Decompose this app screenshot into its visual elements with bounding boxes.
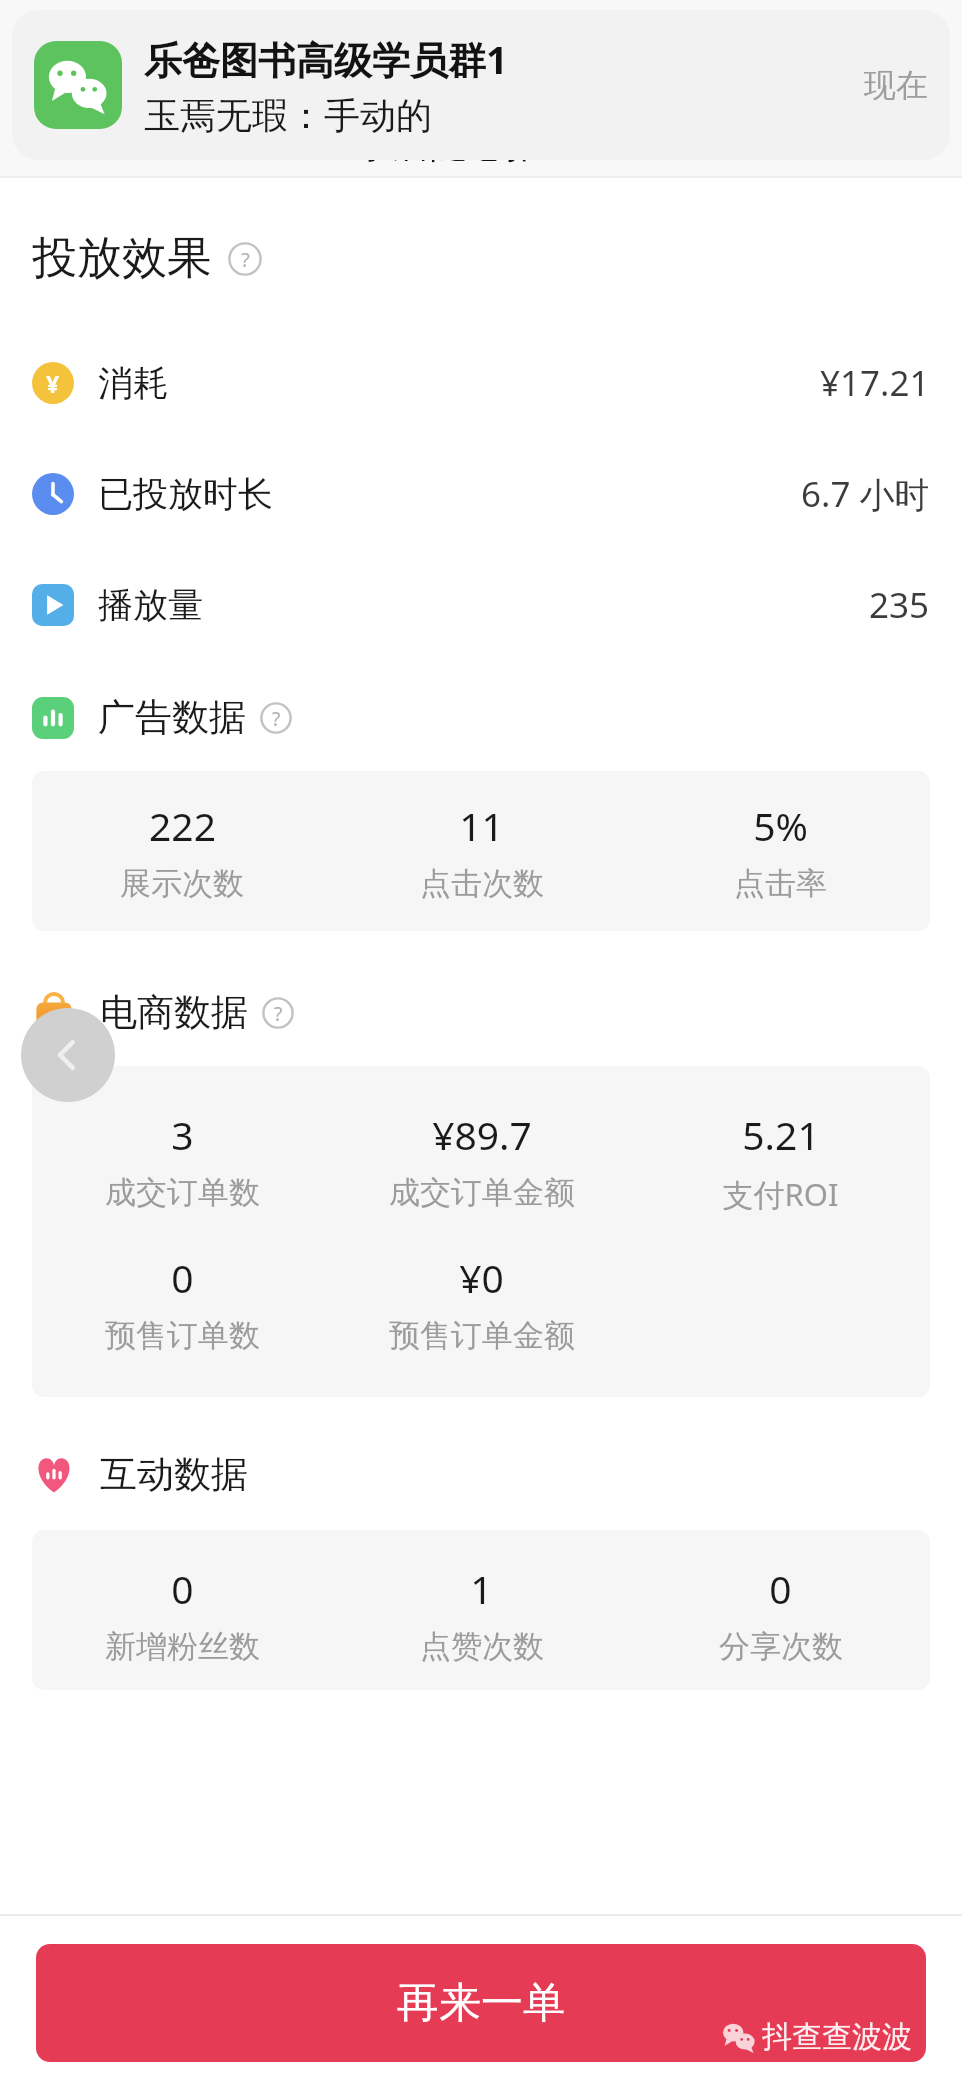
button[interactable]: 3	[32, 1066, 930, 1397]
staticText: 支付ROI	[722, 1173, 839, 1215]
staticText: ?	[241, 245, 250, 273]
staticText: 抖查查波波	[762, 2018, 912, 2056]
staticText: 再来一单	[397, 1977, 565, 2030]
staticText: 3	[171, 1108, 194, 1161]
staticText: 互动数据	[100, 1451, 248, 1498]
staticText: 展示次数	[120, 864, 244, 903]
staticText: ¥0	[459, 1251, 504, 1304]
button[interactable]: 再来一单	[36, 1944, 926, 2062]
staticText: ¥17.21	[820, 359, 930, 407]
staticText: 0	[769, 1562, 792, 1615]
staticText: 0	[171, 1562, 194, 1615]
staticText: 播放量	[98, 583, 203, 627]
button[interactable]: 播放量	[0, 549, 962, 660]
staticText: ¥	[46, 368, 60, 399]
staticText: 6.7 小时	[801, 470, 930, 518]
button[interactable]: 已投放时长	[0, 438, 962, 549]
staticText: 5%	[753, 799, 808, 852]
staticText: 分享次数	[719, 1627, 843, 1666]
staticText: 11	[459, 799, 504, 852]
staticText: 广告数据	[98, 694, 246, 741]
button[interactable]: Back	[34, 122, 78, 166]
staticText: 新增粉丝数	[105, 1627, 260, 1666]
button[interactable]: 互动数据	[0, 1439, 962, 1510]
button[interactable]: 投放效果	[0, 230, 962, 287]
staticText: 电商数据	[100, 989, 248, 1036]
button[interactable]: ¥	[0, 327, 962, 438]
staticText: 已投放时长	[98, 472, 273, 516]
staticText: 点赞次数	[420, 1627, 544, 1666]
staticText: 现在	[864, 65, 928, 105]
staticText: 预售订单金额	[389, 1316, 575, 1355]
button[interactable]: 广告数据	[0, 682, 962, 753]
staticText: 点击次数	[420, 864, 544, 903]
staticText: 玉焉无瑕：手动的	[144, 93, 432, 138]
button[interactable]: 0	[32, 1530, 930, 1690]
staticText: 预售订单数	[105, 1316, 260, 1355]
staticText: ?	[272, 705, 281, 731]
staticText: 1	[470, 1562, 493, 1615]
staticText: 222	[149, 799, 216, 852]
staticText: 5.21	[742, 1108, 820, 1161]
staticText: 235	[869, 581, 930, 629]
staticText: 成交订单金额	[389, 1173, 575, 1212]
button[interactable]: 222	[32, 771, 930, 931]
staticText: ?	[274, 1000, 283, 1026]
button[interactable]: 乐爸图书高级学员群1	[12, 10, 950, 160]
button[interactable]: 电商数据	[0, 977, 962, 1048]
staticText: 成交订单数	[105, 1173, 260, 1212]
staticText: ¥89.7	[432, 1108, 532, 1161]
staticText: 消耗	[98, 361, 168, 405]
staticText: 投放效果	[32, 230, 212, 287]
button[interactable]: Back	[21, 1008, 115, 1102]
staticText: 点击率	[734, 864, 827, 903]
staticText: 小店随心推	[354, 120, 544, 168]
staticText: 乐爸图书高级学员群1	[144, 33, 508, 85]
staticText: 0	[171, 1251, 194, 1304]
